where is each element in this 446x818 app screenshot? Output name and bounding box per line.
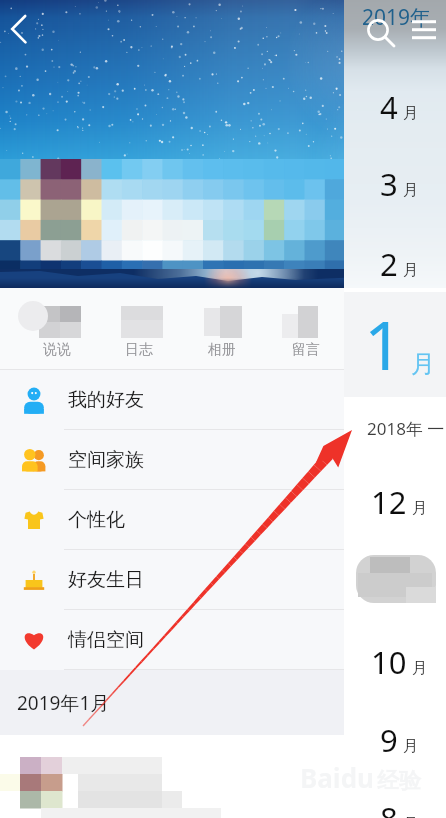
staticText: 1 [364, 297, 403, 390]
staticText: 10 [371, 641, 407, 683]
staticText: 2018年 一 [367, 417, 445, 440]
staticText: 月 [403, 261, 418, 280]
staticText: 空间家族 [68, 448, 144, 472]
button[interactable]: Back [0, 0, 46, 46]
button[interactable]: 日志 [99, 288, 179, 369]
staticText: 2019年1月 [17, 690, 110, 716]
staticText: 留言 [292, 341, 320, 359]
staticText: 月 [403, 737, 418, 756]
button[interactable]: 我的好友 [0, 370, 344, 429]
button[interactable]: 好友生日 [0, 550, 344, 609]
button[interactable]: 相册 [182, 288, 262, 369]
button[interactable]: 1 [344, 292, 446, 397]
button[interactable]: 10 [344, 626, 446, 694]
staticText: 月 [411, 349, 435, 379]
staticText: 说说 [43, 341, 71, 359]
staticText: 2 [380, 243, 398, 285]
staticText: Baidu [300, 760, 374, 795]
button[interactable]: 个性化 [0, 490, 344, 549]
button[interactable]: Search [364, 16, 396, 48]
button[interactable]: 留言 [266, 288, 346, 369]
button[interactable]: 2 [344, 228, 446, 296]
button[interactable]: 9 [344, 704, 446, 772]
staticText: 12 [371, 481, 407, 523]
button[interactable]: 12 [344, 466, 446, 534]
staticText: 2019年 [362, 3, 432, 32]
staticText: 月 [403, 181, 418, 200]
staticText: 9 [380, 719, 398, 761]
staticText: 情侣空间 [68, 628, 144, 652]
staticText: 月 [412, 659, 427, 678]
staticText: 3 [380, 163, 398, 205]
staticText: 经验 [377, 767, 421, 795]
button[interactable]: 空间家族 [0, 430, 344, 489]
staticText: 个性化 [68, 508, 125, 532]
button[interactable]: Menu [406, 12, 438, 44]
staticText: 月 [403, 104, 418, 123]
staticText: 月 [403, 815, 418, 818]
button[interactable]: 8 [344, 782, 446, 818]
staticText: 月 [412, 499, 427, 518]
button[interactable]: 情侣空间 [0, 610, 344, 669]
staticText: 4 [380, 86, 398, 128]
staticText: 8 [380, 797, 398, 818]
button[interactable]: 说说 [17, 288, 97, 369]
staticText: 相册 [208, 341, 236, 359]
button[interactable]: 3 [344, 148, 446, 216]
button[interactable]: 4 [344, 71, 446, 139]
button[interactable] [344, 543, 446, 611]
staticText: 我的好友 [68, 388, 144, 412]
staticText: 好友生日 [68, 568, 144, 592]
staticText: 日志 [125, 341, 153, 359]
